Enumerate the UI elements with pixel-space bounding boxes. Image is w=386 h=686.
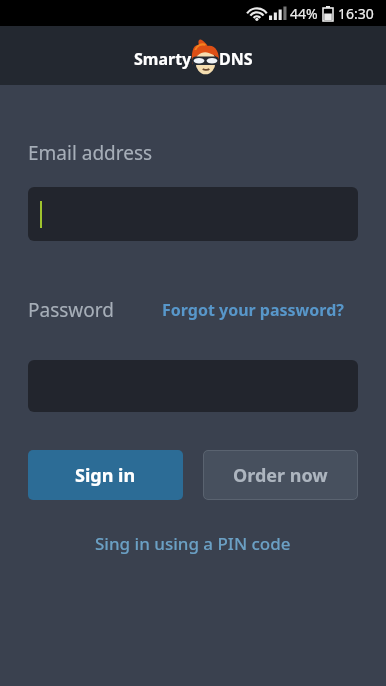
staticText: DNS (219, 48, 253, 70)
staticText: 44% (290, 4, 318, 23)
staticText: Order now (233, 463, 328, 488)
staticText: Smarty (134, 48, 192, 70)
button[interactable]: Sign in (28, 450, 183, 500)
staticText: 16:30 (338, 4, 374, 23)
staticText: Password (28, 297, 114, 323)
button[interactable]: Forgot your password? (162, 299, 344, 321)
button[interactable]: Sing in using a PIN code (95, 532, 291, 555)
button[interactable]: Order now (203, 450, 358, 500)
button[interactable] (28, 187, 358, 241)
staticText: Sign in (75, 463, 136, 488)
staticText: Email address (28, 140, 153, 166)
